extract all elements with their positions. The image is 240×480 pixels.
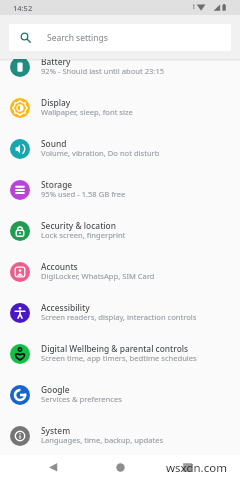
button[interactable]: Accessibility [0,292,240,333]
staticText: Lock screen, fingerprint [41,230,126,240]
staticText: Screen time, app timers, bedtime schedul… [41,353,197,363]
staticText: Languages, time, backup, updates [41,435,164,445]
staticText: Wallpaper, sleep, font size [41,107,133,117]
button[interactable]: Sound [0,128,240,169]
staticText: Battery [41,59,71,67]
button[interactable]: Security & location [0,210,240,251]
staticText: 95% used - 1.58 GB free [41,189,126,199]
button[interactable]: Back [36,458,70,477]
button[interactable]: Battery [0,59,240,87]
button[interactable]: System [0,415,240,455]
button[interactable]: Home [103,458,137,477]
button[interactable]: Storage [0,169,240,210]
button[interactable]: Recent apps [170,458,204,477]
button[interactable]: Accounts [0,251,240,292]
button[interactable]: Search settings [9,24,231,51]
staticText: Accessibility [41,302,90,313]
staticText: Security & location [41,220,116,231]
staticText: Volume, vibration, Do not disturb [41,148,160,158]
staticText: Google [41,384,70,395]
staticText: System [41,425,71,436]
staticText: DigiLocker, WhatsApp, SIM Card [41,271,155,281]
staticText: 14:52 [13,3,33,13]
button[interactable]: Google [0,374,240,415]
staticText: Digital Wellbeing & parental controls [41,343,189,354]
staticText: Services & preferences [41,394,122,404]
staticText: Search settings [47,32,108,44]
button[interactable]: Digital Wellbeing & parental controls [0,333,240,374]
staticText: Display [41,97,71,108]
staticText: Sound [41,138,67,149]
button[interactable]: Display [0,87,240,128]
staticText: 92% - Should last until about 23:15 [41,66,165,76]
staticText: wsxdn.com [166,460,227,476]
staticText: Screen readers, display, interaction con… [41,312,197,322]
staticText: Accounts [41,261,78,272]
staticText: Storage [41,179,73,190]
